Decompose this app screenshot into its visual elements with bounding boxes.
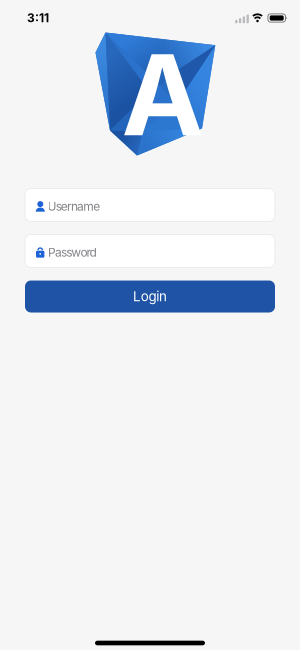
button[interactable]: Password [25,234,275,267]
staticText: Username [48,199,100,213]
staticText: Password [48,245,97,259]
button[interactable]: Username [25,188,275,221]
button[interactable]: Login [25,280,275,312]
staticText: Login [133,289,167,304]
staticText: 3:11 [27,11,49,25]
staticText: A [121,30,204,160]
